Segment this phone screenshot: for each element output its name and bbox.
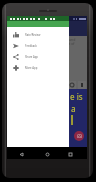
button[interactable]: Rate/Review xyxy=(7,29,69,40)
staticText: a xyxy=(71,103,76,114)
staticText: Share App xyxy=(25,55,38,59)
staticText: e is xyxy=(70,91,83,102)
button[interactable]: More App xyxy=(7,62,69,73)
button[interactable]: Back xyxy=(17,150,25,158)
button[interactable]: Home xyxy=(43,150,51,158)
staticText: Rate/Review xyxy=(25,33,41,37)
staticText: Feedback xyxy=(25,44,37,48)
button[interactable]: Share xyxy=(78,81,86,89)
staticText: More App xyxy=(25,66,38,70)
staticText: and t of xyxy=(69,37,76,46)
button[interactable]: Rate xyxy=(68,81,76,89)
button[interactable]: New message xyxy=(74,131,84,141)
button[interactable]: Feedback xyxy=(7,40,69,51)
button[interactable]: Recents xyxy=(66,150,74,158)
button[interactable]: Share App xyxy=(7,51,69,62)
